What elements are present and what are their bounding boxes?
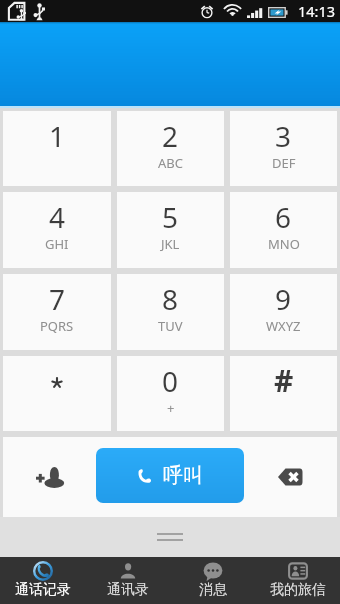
staticText: WXYZ xyxy=(266,317,301,335)
staticText: 我的旅信 xyxy=(270,581,326,599)
staticText: 1 xyxy=(49,117,66,155)
button[interactable] xyxy=(3,356,111,431)
staticText: 0 xyxy=(162,362,179,400)
button[interactable]: 消息 xyxy=(170,557,255,604)
staticText: 8 xyxy=(162,280,179,318)
staticText: 7 xyxy=(49,280,66,318)
button[interactable]: 通讯录 xyxy=(85,557,170,604)
button[interactable]: 通话记录 xyxy=(0,557,85,604)
staticText: TUV xyxy=(158,317,183,335)
button[interactable]: 5 xyxy=(117,192,224,268)
button[interactable]: 呼叫 xyxy=(96,448,244,503)
button[interactable]: 我的旅信 xyxy=(255,557,340,604)
staticText: 14:13 xyxy=(298,1,336,21)
staticText: 6 xyxy=(275,198,292,236)
staticText: 5 xyxy=(162,198,179,236)
staticText: JKL xyxy=(161,235,180,253)
button[interactable]: 7 xyxy=(3,274,111,350)
staticText: 通话记录 xyxy=(15,581,71,599)
staticText: # xyxy=(274,360,294,401)
staticText: 4 xyxy=(49,198,66,236)
staticText: DEF xyxy=(272,154,296,172)
staticText: PQRS xyxy=(40,317,74,335)
staticText: 9 xyxy=(275,280,292,318)
staticText: 呼叫 xyxy=(163,463,203,488)
button[interactable]: Delete xyxy=(244,437,337,517)
staticText: MNO xyxy=(268,235,300,253)
staticText: GHI xyxy=(45,235,69,253)
staticText: 3 xyxy=(275,117,292,155)
staticText: + xyxy=(167,399,175,417)
button[interactable]: Add contact xyxy=(3,437,96,517)
staticText: ABC xyxy=(158,154,183,172)
button[interactable]: 2 xyxy=(117,111,224,186)
button[interactable]: 6 xyxy=(230,192,337,268)
button[interactable]: 4 xyxy=(3,192,111,268)
staticText: 消息 xyxy=(199,581,227,599)
button[interactable]: 8 xyxy=(117,274,224,350)
button[interactable]: # xyxy=(230,356,337,431)
staticText: 2 xyxy=(162,117,179,155)
button[interactable]: 1 xyxy=(3,111,111,186)
staticText: 通讯录 xyxy=(107,581,149,599)
button[interactable]: 3 xyxy=(230,111,337,186)
button[interactable]: 0 xyxy=(117,356,224,431)
button[interactable]: 9 xyxy=(230,274,337,350)
